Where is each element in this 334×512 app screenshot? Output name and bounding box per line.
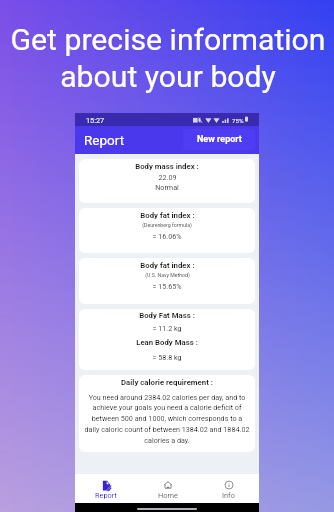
button[interactable]: Info (198, 474, 259, 503)
staticText: Daily calorie requirement : (121, 378, 213, 387)
staticText: Body mass index : (135, 162, 199, 171)
staticText: Report (84, 132, 125, 148)
staticText: Body fat index : (140, 211, 195, 220)
staticText: 22.09 (158, 173, 177, 181)
staticText: Info (222, 491, 235, 500)
staticText: = 58.8 kg (152, 353, 182, 361)
staticText: Body fat index : (140, 261, 195, 270)
staticText: = 11.2 kg (152, 324, 182, 332)
staticText: = 16.06% (152, 232, 182, 240)
staticText: 15:27 (86, 116, 105, 125)
staticText: Normal (155, 183, 179, 191)
button[interactable]: Daily calorie requirement : (79, 375, 255, 452)
staticText: (U.S. Navy Method) (145, 272, 190, 278)
staticText: New report (197, 134, 242, 145)
staticText: Body Fat Mass : (139, 311, 195, 320)
staticText: Report (95, 491, 117, 500)
staticText: Home (158, 491, 178, 500)
button[interactable]: Body mass index : (79, 159, 255, 203)
button[interactable]: New report (183, 129, 255, 150)
staticText: You need around 2384.02 calories per day… (84, 393, 250, 445)
button[interactable]: Home (137, 474, 198, 503)
staticText: Lean Body Mass : (136, 338, 198, 347)
staticText: (Deurenberg formula) (142, 222, 192, 228)
button[interactable]: Report (75, 474, 137, 503)
button[interactable]: Body fat index : (79, 208, 255, 253)
button[interactable]: Body Fat Mass : (79, 309, 255, 370)
staticText: = 15.65% (152, 282, 182, 290)
staticText: Get precise information about your body (10, 22, 326, 94)
staticText: 75% (232, 117, 244, 124)
button[interactable]: Body fat index : (79, 258, 255, 304)
